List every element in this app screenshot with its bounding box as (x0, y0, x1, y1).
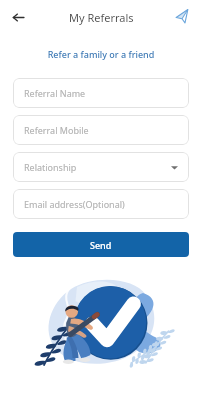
button[interactable]: Email address(Optional) (13, 189, 189, 219)
staticText: Referral Mobile (24, 124, 89, 136)
staticText: My Referrals (69, 10, 134, 25)
button[interactable]: Send referral (172, 6, 194, 28)
button[interactable]: Relationship (13, 152, 189, 182)
button[interactable]: Referral Mobile (13, 115, 189, 145)
staticText: Email address(Optional) (24, 198, 125, 210)
button[interactable]: Send (13, 232, 189, 257)
staticText: Relationship (24, 161, 77, 173)
button[interactable]: Back (6, 5, 30, 29)
button[interactable]: Referral Name (13, 78, 189, 108)
staticText: Send (90, 239, 112, 251)
staticText: Refer a family or a friend (0, 48, 202, 60)
staticText: Referral Name (24, 87, 86, 99)
